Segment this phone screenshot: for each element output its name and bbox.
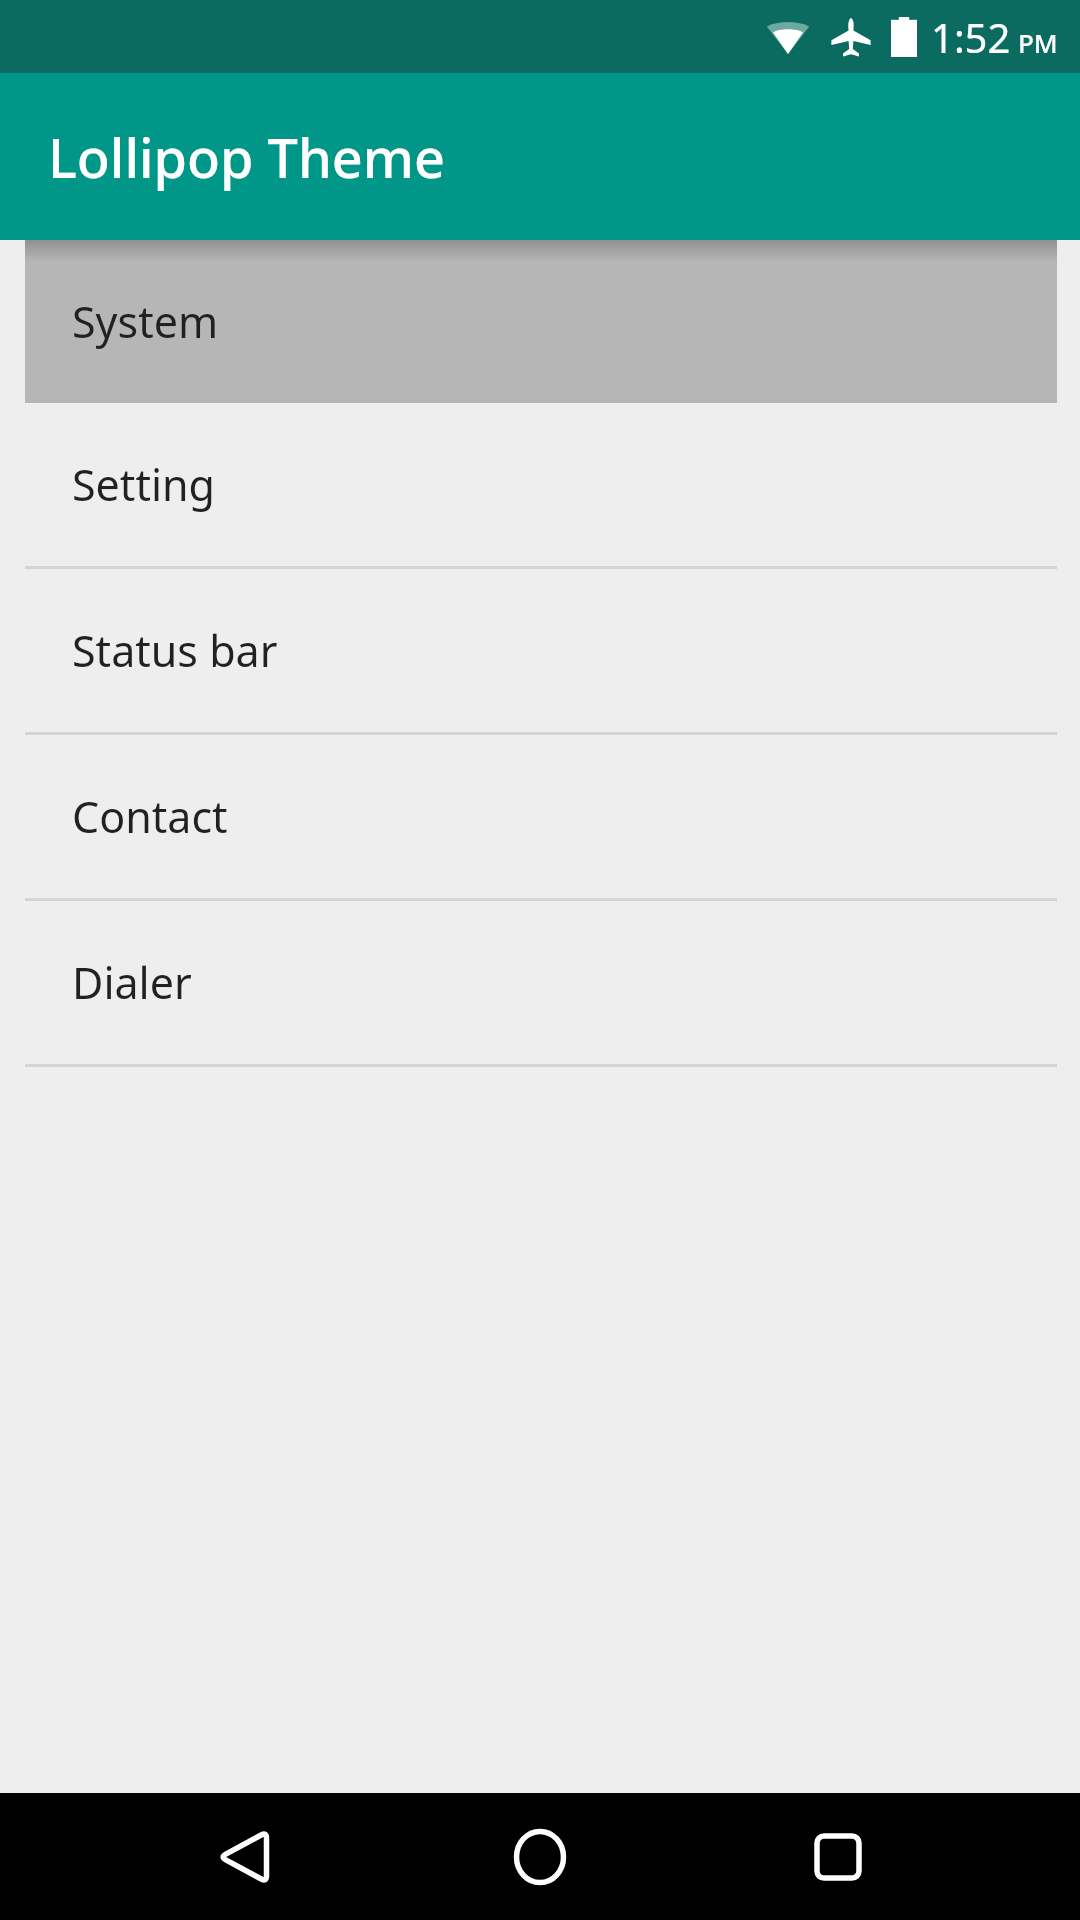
button[interactable]: Dialer	[0, 901, 1080, 1064]
button[interactable]: Home	[485, 1802, 595, 1912]
button[interactable]: System	[25, 240, 1057, 403]
staticText: PM	[1018, 25, 1058, 60]
staticText: Status bar	[72, 621, 278, 680]
button[interactable]: Recent apps	[783, 1802, 893, 1912]
staticText: Lollipop Theme	[48, 120, 445, 194]
button[interactable]: Setting	[0, 403, 1080, 566]
staticText: Dialer	[72, 953, 192, 1012]
button[interactable]: Contact	[0, 735, 1080, 898]
staticText: Setting	[72, 455, 216, 514]
staticText: 1:52	[931, 10, 1011, 64]
staticText: Contact	[72, 787, 228, 846]
button[interactable]: Status bar	[0, 569, 1080, 732]
staticText: System	[72, 292, 219, 351]
button[interactable]: Back	[188, 1802, 298, 1912]
